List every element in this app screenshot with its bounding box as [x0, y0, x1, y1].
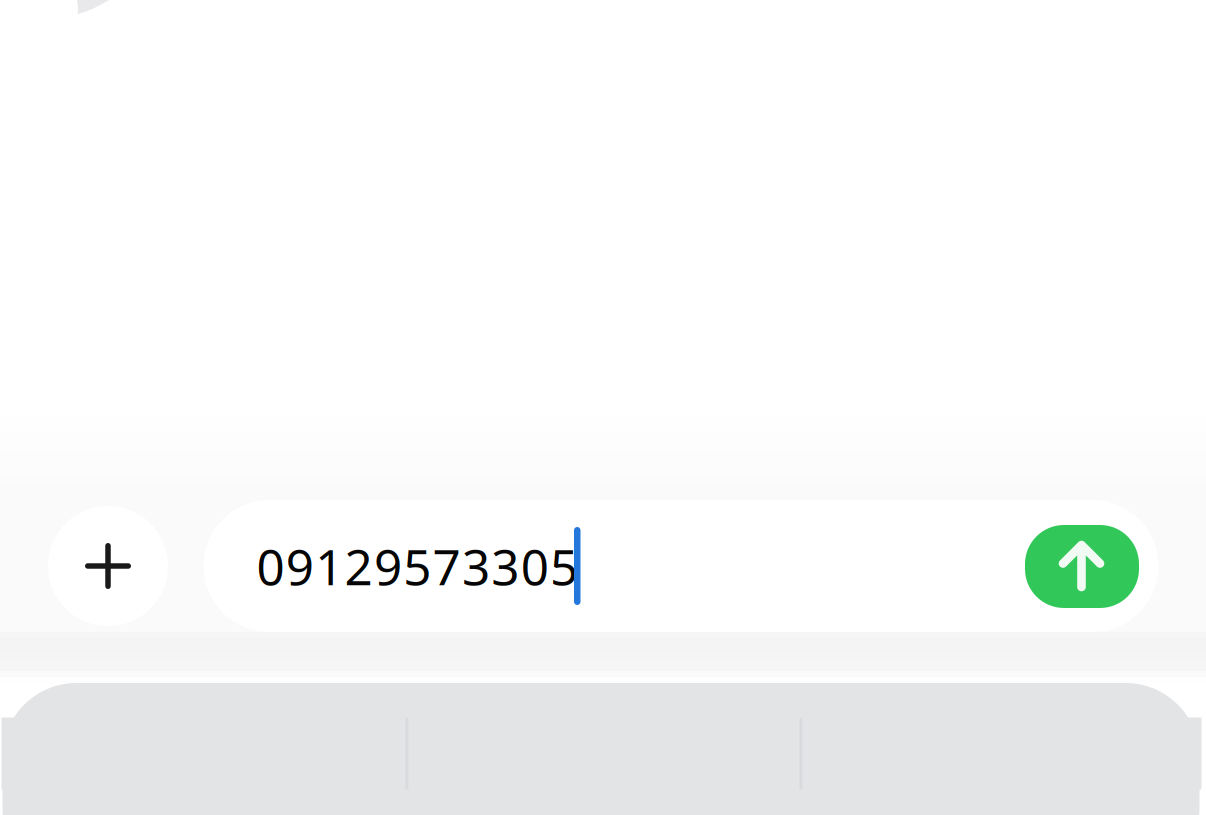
- button[interactable]: Send: [1025, 525, 1139, 608]
- button[interactable]: Add attachment: [48, 506, 168, 626]
- staticText: 09129573305: [256, 533, 578, 599]
